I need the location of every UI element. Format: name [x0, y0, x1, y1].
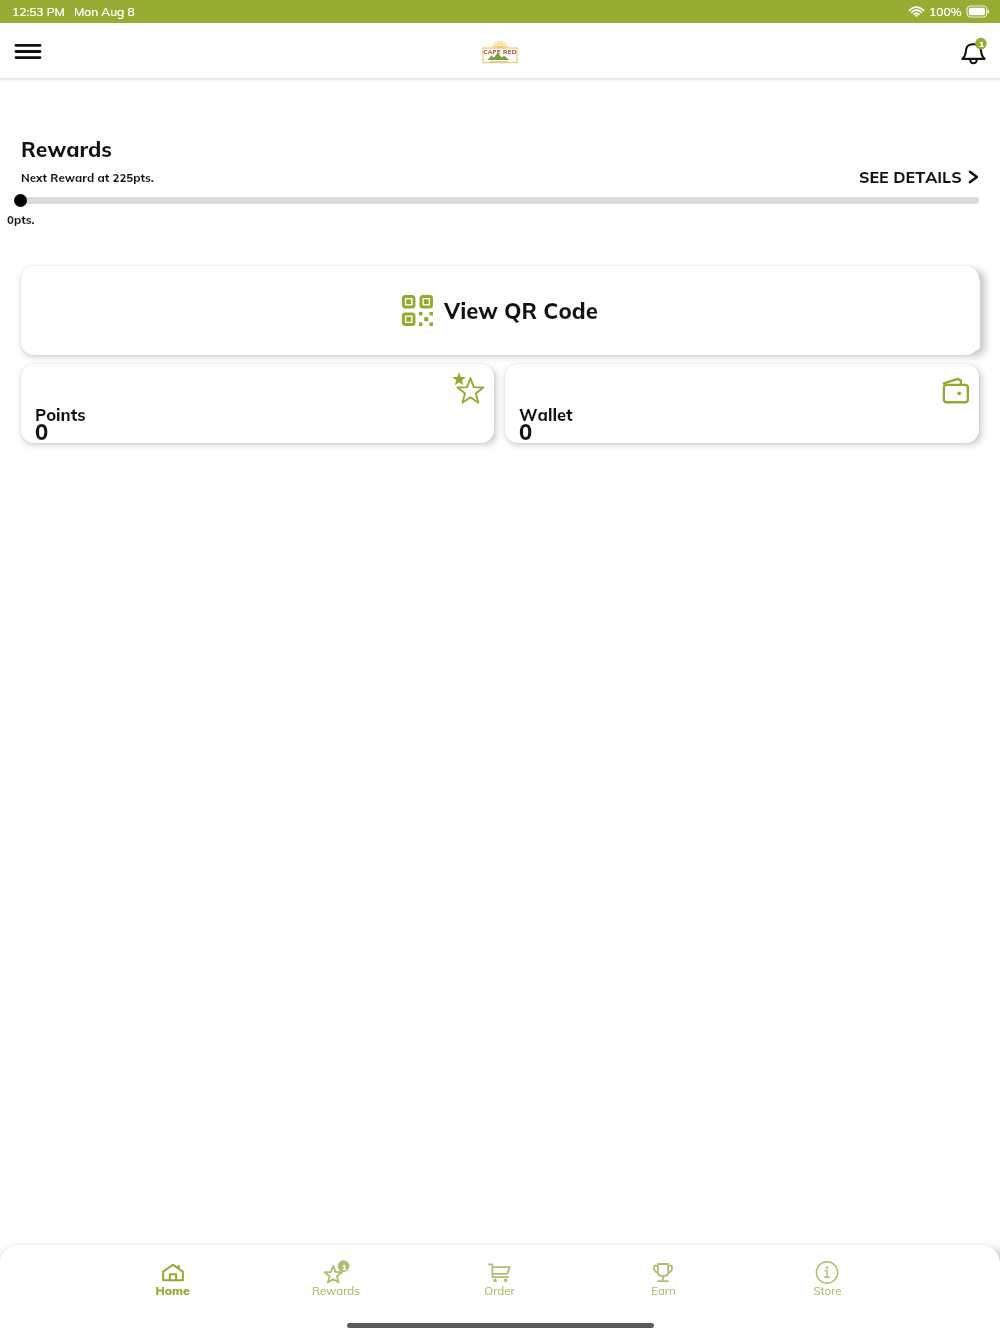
button[interactable]: Store: [745, 1262, 909, 1317]
button[interactable]: Earn: [581, 1262, 745, 1317]
button[interactable]: 1: [254, 1262, 417, 1317]
staticText: Points: [35, 404, 86, 425]
button[interactable]: Home: [91, 1262, 254, 1317]
staticText: Store: [813, 1283, 842, 1297]
staticText: Home: [155, 1283, 190, 1298]
staticText: Rewards: [312, 1283, 360, 1297]
staticText: Mon Aug 8: [74, 4, 135, 19]
staticText: Order: [484, 1283, 515, 1297]
staticText: Next Reward at 225pts.: [21, 170, 154, 184]
button[interactable]: Points: [21, 364, 494, 443]
staticText: SEE DETAILS: [859, 167, 962, 187]
staticText: 100%: [929, 4, 962, 19]
staticText: 1: [979, 39, 984, 49]
button[interactable]: SEE DETAILS: [847, 163, 1000, 191]
staticText: 0pts.: [7, 212, 35, 226]
staticText: Rewards: [21, 136, 112, 162]
staticText: View QR Code: [444, 297, 598, 325]
staticText: Wallet: [519, 404, 573, 425]
staticText: 12:53 PM: [12, 4, 65, 19]
button[interactable]: View QR Code: [21, 266, 979, 355]
staticText: Earn: [651, 1283, 676, 1297]
staticText: 1: [342, 1262, 347, 1271]
staticText: 0: [35, 418, 49, 443]
button[interactable]: Order: [417, 1262, 581, 1317]
button[interactable]: Open navigation menu: [4, 27, 52, 75]
staticText: 0: [519, 418, 533, 443]
staticText: CAFE RED: [482, 48, 518, 56]
button[interactable]: Wallet: [505, 364, 979, 443]
button[interactable]: Notifications, 1 new: [951, 29, 995, 73]
